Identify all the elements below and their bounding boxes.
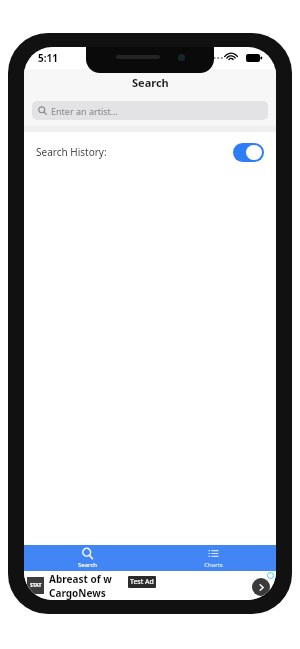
staticText: Charts — [204, 561, 223, 569]
staticText: Enter an artist... — [51, 105, 119, 117]
button[interactable]: Search — [24, 545, 150, 571]
button[interactable]: Charts — [150, 545, 276, 571]
staticText: 5:11 — [38, 51, 58, 65]
staticText: STAT — [30, 582, 42, 589]
button[interactable]: Toggle search history — [233, 143, 264, 162]
staticText: Abreast of w — [49, 572, 112, 586]
button[interactable]: Enter an artist... — [32, 101, 268, 120]
button[interactable]: Open ad — [252, 578, 270, 596]
staticText: Search — [78, 561, 97, 569]
staticText: Test Ad — [130, 577, 154, 587]
staticText: Search — [132, 75, 169, 90]
staticText: CargoNews — [49, 586, 106, 600]
staticText: Search History: — [36, 145, 107, 159]
button[interactable]: Search History: — [24, 132, 276, 172]
